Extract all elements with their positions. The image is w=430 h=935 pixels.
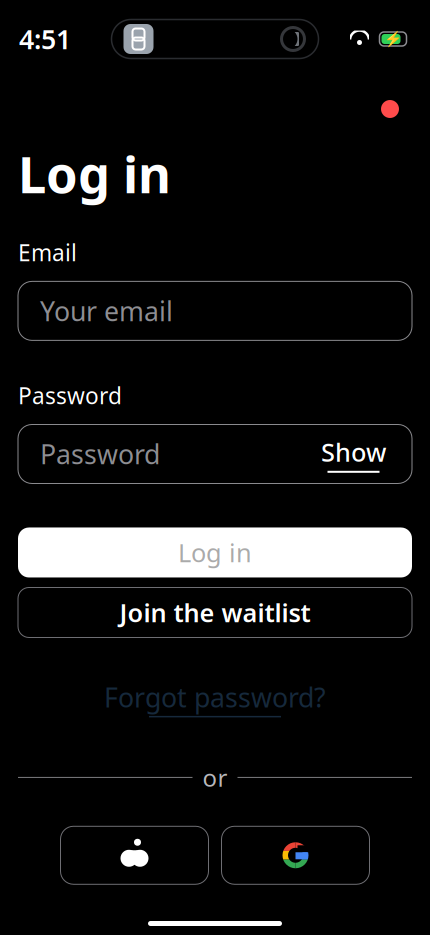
button[interactable]: Forgot password? — [94, 673, 336, 723]
button[interactable]: Sign in with Google — [221, 826, 369, 884]
button[interactable]: Show — [317, 427, 390, 481]
staticText: 4:51 — [19, 21, 71, 57]
staticText: Password — [18, 380, 122, 410]
button[interactable]: Sign in with Apple — [60, 826, 208, 884]
staticText: Your email — [40, 293, 173, 329]
staticText: Email — [18, 237, 77, 267]
staticText: ⚡ — [384, 31, 402, 47]
staticText: Join the waitlist — [119, 596, 310, 629]
staticText: Show — [321, 435, 386, 469]
staticText: Log in — [18, 140, 171, 207]
staticText: Forgot password? — [104, 679, 326, 715]
button[interactable]: Log in — [18, 527, 412, 577]
staticText: Password — [40, 436, 160, 472]
staticText: Log in — [178, 536, 252, 569]
button[interactable]: Join the waitlist — [18, 587, 412, 637]
staticText: or — [202, 761, 227, 793]
